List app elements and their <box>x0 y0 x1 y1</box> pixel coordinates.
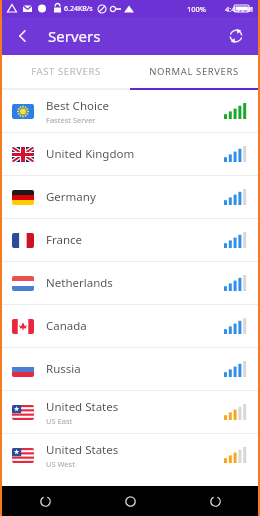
button[interactable]: FAST SERVERS <box>2 55 130 88</box>
button[interactable]: Refresh <box>222 22 250 50</box>
button[interactable]: United States <box>2 391 258 433</box>
staticText: 6.24KB/s <box>64 4 93 14</box>
button[interactable]: Canada <box>2 305 258 347</box>
button[interactable]: Back <box>2 486 88 516</box>
staticText: 4:43 PM <box>225 4 254 14</box>
button[interactable]: United Kingdom <box>2 133 258 175</box>
staticText: FAST SERVERS <box>31 65 101 78</box>
staticText: Netherlands <box>46 275 113 291</box>
button[interactable]: Netherlands <box>2 262 258 304</box>
button[interactable]: Recents <box>173 486 258 516</box>
staticText: Germany <box>46 189 96 205</box>
staticText: Russia <box>46 361 81 377</box>
button[interactable]: Best Choice <box>2 90 258 132</box>
button[interactable]: NORMAL SERVERS <box>130 55 258 88</box>
button[interactable]: France <box>2 219 258 261</box>
staticText: United Kingdom <box>46 146 135 162</box>
button[interactable]: Germany <box>2 176 258 218</box>
button[interactable]: Back <box>8 21 38 51</box>
button[interactable]: Home <box>88 486 173 516</box>
staticText: United States <box>46 399 119 415</box>
staticText: NORMAL SERVERS <box>149 65 239 78</box>
staticText: 100% <box>187 4 207 14</box>
staticText: Servers <box>48 26 101 46</box>
staticText: Fastest Server <box>46 115 96 125</box>
button[interactable]: Russia <box>2 348 258 390</box>
staticText: Canada <box>46 318 87 334</box>
staticText: US East <box>46 416 73 426</box>
staticText: France <box>46 232 83 248</box>
staticText: United States <box>46 442 119 458</box>
staticText: Best Choice <box>46 98 109 114</box>
staticText: US West <box>46 459 75 469</box>
button[interactable]: United States <box>2 434 258 476</box>
